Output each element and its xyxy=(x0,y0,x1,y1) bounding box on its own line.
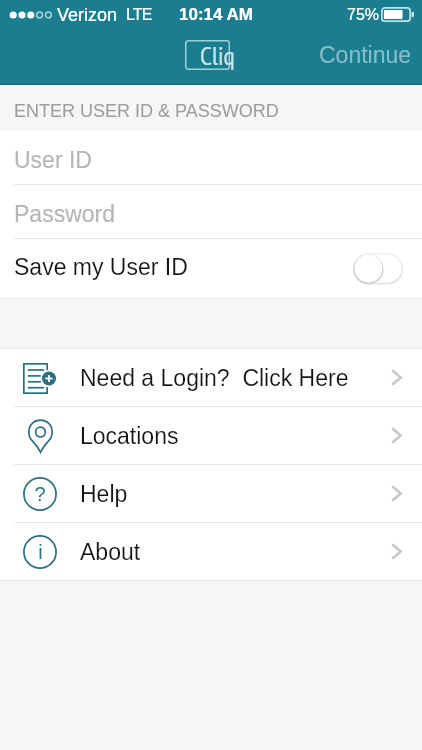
staticText: Help xyxy=(80,481,128,507)
button[interactable]: Save my User ID xyxy=(0,239,422,298)
button[interactable]: Need a Login? Click Here xyxy=(0,349,422,406)
staticText: User ID xyxy=(14,147,92,173)
staticText: Need a Login? Click Here xyxy=(80,365,349,391)
staticText: LTE xyxy=(126,6,152,24)
staticText: i xyxy=(38,541,43,563)
other: Battery 75 percent xyxy=(381,7,416,22)
staticText: 10:14 AM xyxy=(179,5,254,24)
staticText: ? xyxy=(34,483,46,505)
staticText: Continue xyxy=(319,42,412,68)
button[interactable]: ? xyxy=(0,465,422,522)
staticText: Password xyxy=(14,201,115,227)
staticText: 75% xyxy=(347,6,380,24)
button[interactable]: Locations xyxy=(0,407,422,464)
button[interactable]: Continue xyxy=(303,34,422,76)
other: Signal strength xyxy=(9,8,55,22)
staticText: About xyxy=(80,539,141,565)
staticText: Cliq xyxy=(200,39,235,73)
button[interactable]: i xyxy=(0,523,422,580)
staticText: Save my User ID xyxy=(14,254,188,280)
staticText: Verizon xyxy=(57,5,118,25)
staticText: ENTER USER ID & PASSWORD xyxy=(14,101,279,121)
button[interactable]: Password xyxy=(0,185,422,238)
other: Save my User ID toggle, off xyxy=(353,253,403,284)
staticText: Locations xyxy=(80,423,179,449)
button[interactable]: Cliq xyxy=(185,40,230,74)
button[interactable]: User ID xyxy=(0,131,422,184)
